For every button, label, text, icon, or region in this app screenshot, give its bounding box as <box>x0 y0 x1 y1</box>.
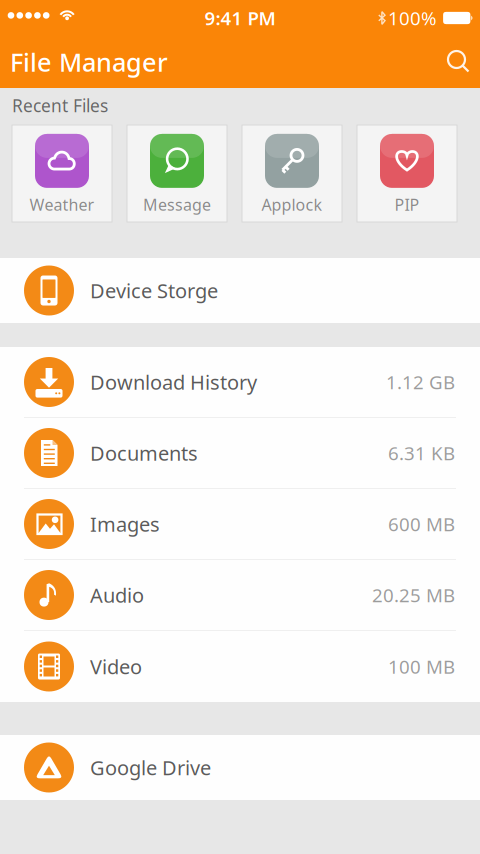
button[interactable]: Images <box>0 489 480 559</box>
staticText: PIP <box>394 194 419 215</box>
staticText: Device Storge <box>90 277 218 304</box>
staticText: 100% <box>388 6 437 30</box>
staticText: Download History <box>90 369 257 395</box>
button[interactable]: Google Drive <box>0 735 480 800</box>
button[interactable]: Video <box>0 631 480 702</box>
button[interactable]: Documents <box>0 418 480 488</box>
button[interactable]: Device Storge <box>0 258 480 323</box>
staticText: Applock <box>261 194 322 215</box>
staticText: 1.12 GB <box>386 370 455 394</box>
button[interactable]: Message <box>127 125 227 222</box>
staticText: 6.31 KB <box>388 441 455 465</box>
staticText: File Manager <box>10 45 168 79</box>
staticText: Recent Files <box>12 94 108 117</box>
staticText: Video <box>90 653 142 680</box>
button[interactable]: Weather <box>12 125 112 222</box>
staticText: Google Drive <box>90 754 211 781</box>
staticText: Images <box>90 511 160 537</box>
button[interactable]: Download History <box>0 347 480 417</box>
staticText: 9:41 PM <box>204 6 275 30</box>
button[interactable]: Applock <box>242 125 342 222</box>
staticText: Message <box>143 194 211 215</box>
staticText: Audio <box>90 582 144 608</box>
button[interactable]: Search <box>444 47 480 77</box>
staticText: 600 MB <box>388 512 455 536</box>
staticText: 20.25 MB <box>372 583 455 607</box>
staticText: Weather <box>29 194 94 215</box>
button[interactable]: PIP <box>357 125 457 222</box>
staticText: Documents <box>90 440 198 466</box>
staticText: 100 MB <box>388 654 455 679</box>
button[interactable]: Audio <box>0 560 480 630</box>
